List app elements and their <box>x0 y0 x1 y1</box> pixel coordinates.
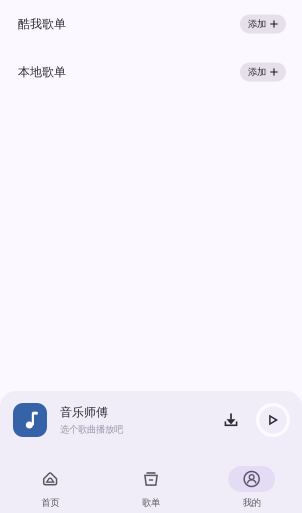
staticText: 本地歌单 <box>18 65 66 79</box>
button[interactable]: Play <box>256 403 290 437</box>
button[interactable]: Download <box>217 406 245 434</box>
staticText: 我的 <box>243 497 261 508</box>
button[interactable]: 添加 <box>240 62 286 81</box>
staticText: 酷我歌单 <box>18 17 66 31</box>
staticText: 选个歌曲播放吧 <box>60 424 123 435</box>
staticText: 歌单 <box>142 497 160 508</box>
button[interactable]: 歌单 <box>101 449 201 513</box>
staticText: 添加 <box>248 18 266 30</box>
staticText: 音乐师傅 <box>60 405 108 420</box>
staticText: 添加 <box>248 66 266 78</box>
button[interactable]: 首页 <box>0 449 101 513</box>
button[interactable]: 我的 <box>201 449 302 513</box>
button[interactable]: 添加 <box>240 14 286 33</box>
button[interactable]: Now playing artwork <box>13 403 47 437</box>
staticText: 首页 <box>41 497 59 508</box>
